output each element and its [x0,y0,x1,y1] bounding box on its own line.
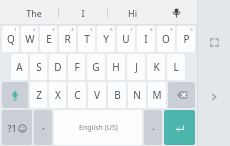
staticText: J [135,60,138,74]
staticText: I [144,32,148,46]
button[interactable]: Hi [108,0,156,25]
button[interactable]: A [11,54,28,80]
staticText: 6 [110,27,113,32]
staticText: M [152,88,162,102]
staticText: P [183,32,190,46]
button[interactable]: O [157,26,175,52]
staticText: T [84,32,90,46]
button[interactable]: K [147,54,165,80]
staticText: R [64,32,71,46]
staticText: O [162,32,170,46]
staticText: , [42,119,45,131]
button[interactable]: M [148,82,166,108]
staticText: U [122,32,130,46]
staticText: A [16,60,23,74]
button[interactable]: B [108,82,126,108]
button[interactable]: U [117,26,135,52]
staticText: Hi [128,7,137,19]
button[interactable]: N [128,82,146,108]
button[interactable]: J [127,54,145,80]
button[interactable]: L [167,54,185,80]
button[interactable]: The [10,0,58,25]
staticText: E [46,32,52,46]
button[interactable]: W [21,26,38,52]
staticText: English (US) [79,123,118,133]
staticText: 3 [52,27,55,32]
staticText: The [26,7,42,19]
staticText: K [153,60,160,74]
staticText: D [54,60,62,74]
button[interactable]: R [59,26,76,52]
button[interactable]: H [107,54,125,80]
staticText: 7 [130,27,133,32]
button[interactable]: I [137,26,155,52]
button[interactable]: S [30,54,47,80]
button[interactable]: Y [97,26,115,52]
staticText: L [173,60,179,74]
staticText: . [152,120,155,132]
button[interactable]: Resize keyboard [200,28,228,56]
button[interactable]: G [87,54,105,80]
button[interactable]: I [59,0,107,25]
staticText: Q [7,32,15,46]
staticText: ?1 [7,122,17,134]
staticText: 0 [190,27,193,32]
button[interactable]: Q [2,26,19,52]
staticText: Y [103,32,109,46]
staticText: Z [36,88,42,102]
button[interactable]: Enter [164,110,195,145]
staticText: 1 [14,27,17,32]
button[interactable]: ?1 [2,110,32,145]
button[interactable]: V [88,82,106,108]
staticText: N [133,88,141,102]
staticText: 5 [90,27,93,32]
staticText: 4 [71,27,74,32]
staticText: V [94,88,100,102]
button[interactable]: F [68,54,85,80]
button[interactable]: X [49,82,66,108]
button[interactable]: Shift [2,82,28,108]
button[interactable]: T [78,26,95,52]
button[interactable]: Space [54,110,142,145]
staticText: S [36,60,42,74]
button[interactable]: , [34,110,52,145]
staticText: H [112,60,120,74]
button[interactable]: . [144,110,162,145]
staticText: C [74,88,81,102]
button[interactable]: Z [30,82,47,108]
staticText: 8 [150,27,153,32]
button[interactable]: Next [200,83,228,111]
staticText: F [74,60,80,74]
staticText: 2 [33,27,36,32]
staticText: X [55,88,61,102]
button[interactable]: Voice input [156,0,197,25]
button[interactable]: P [177,26,195,52]
staticText: 9 [170,27,173,32]
button[interactable]: C [68,82,86,108]
staticText: W [25,32,35,46]
button[interactable]: D [49,54,66,80]
staticText: I [81,7,85,19]
staticText: G [92,60,100,74]
button[interactable]: E [40,26,57,52]
staticText: B [114,88,121,102]
button[interactable]: Backspace [168,82,195,108]
